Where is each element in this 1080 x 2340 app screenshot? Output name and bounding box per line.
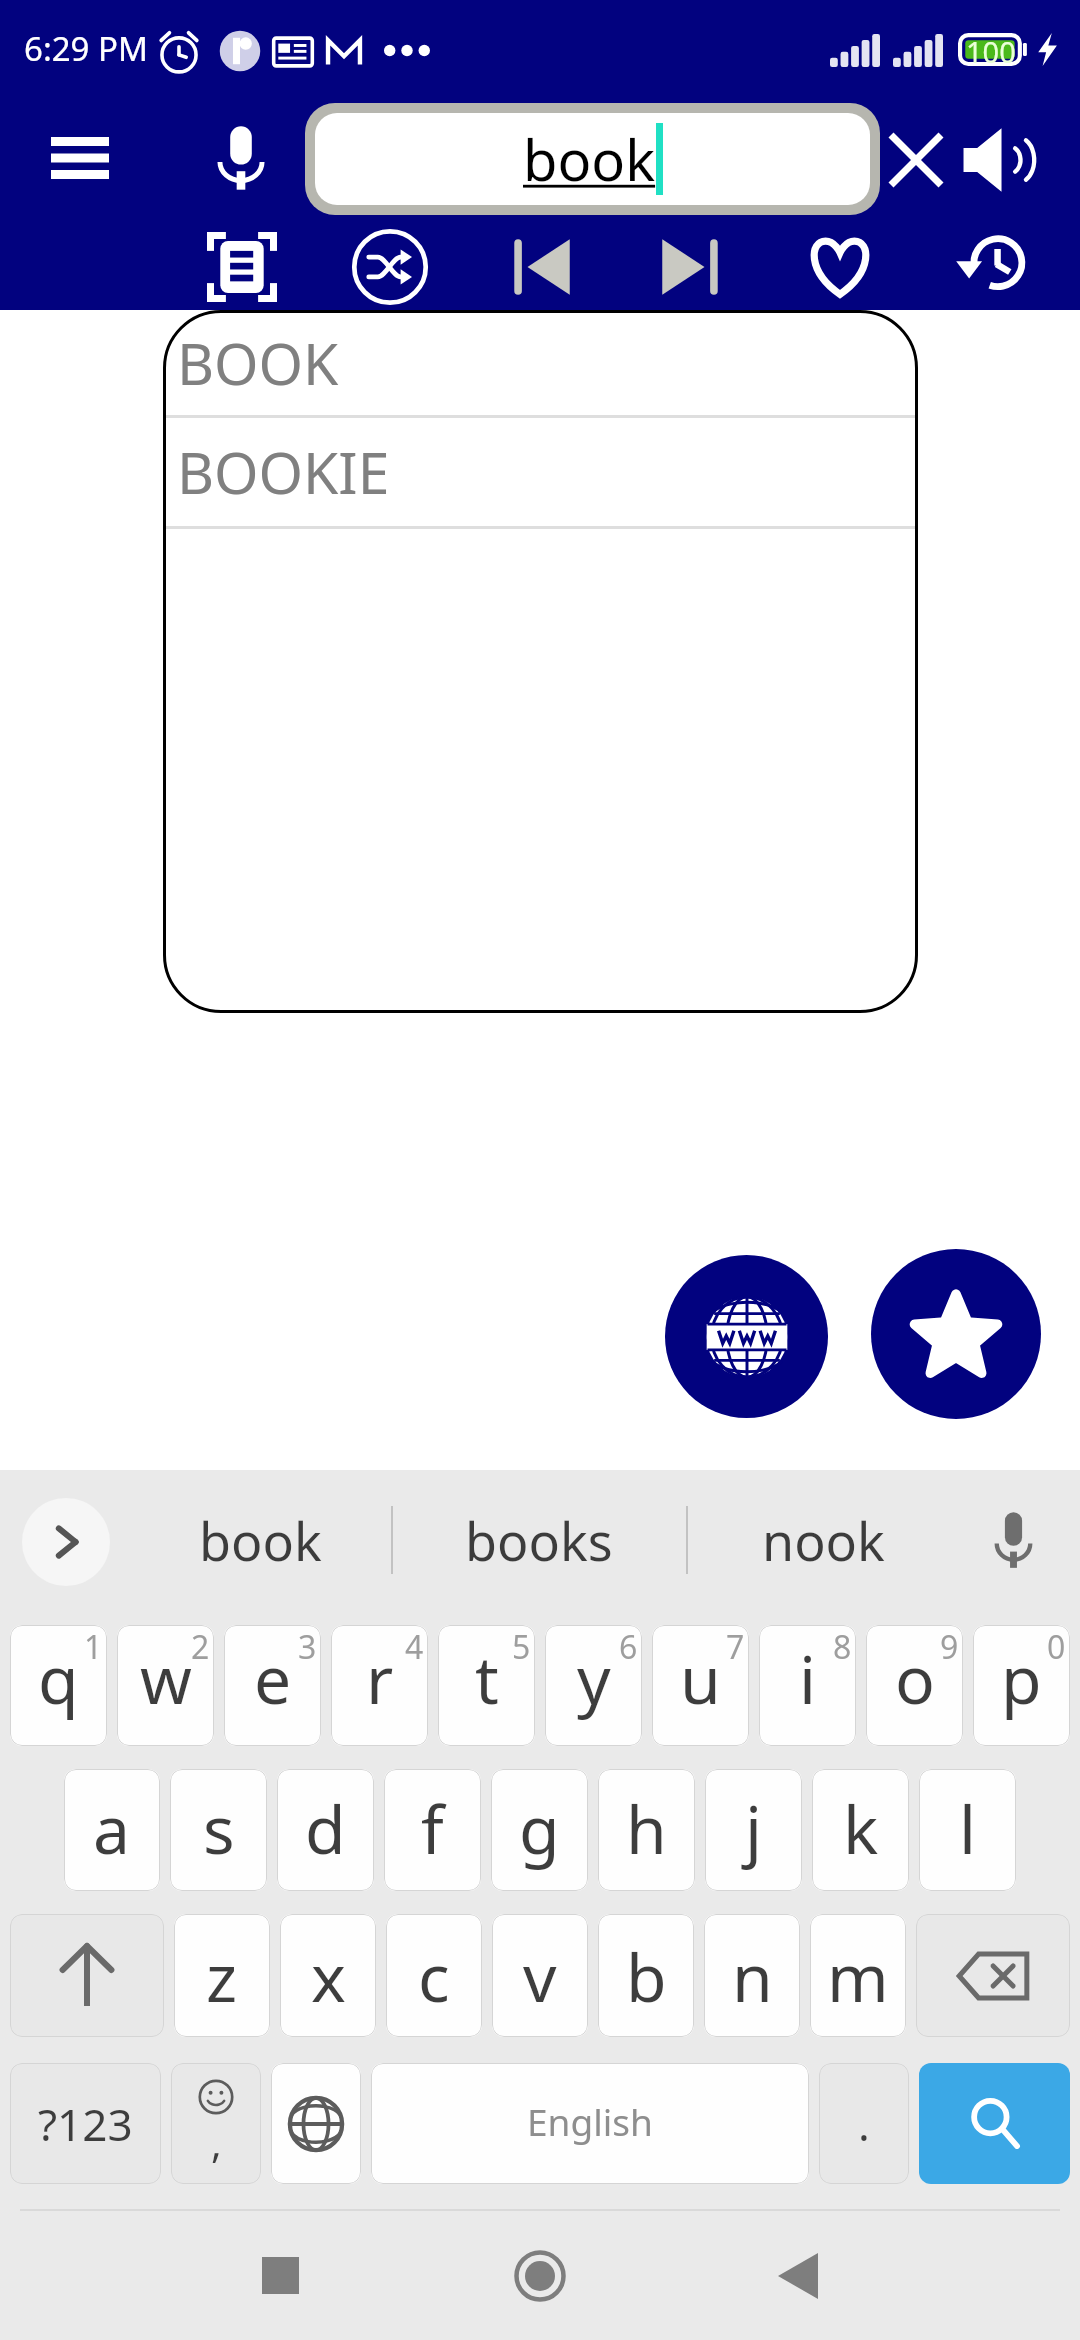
button[interactable]: Emoji — [171, 2063, 261, 2184]
button[interactable]: d — [277, 1769, 374, 1891]
staticText: 100 — [966, 32, 1016, 65]
staticText: 6 — [619, 1625, 638, 1669]
staticText: t — [475, 1633, 499, 1723]
button[interactable]: Web search — [665, 1255, 828, 1418]
button[interactable]: 9 — [866, 1625, 963, 1746]
staticText: b — [626, 1931, 667, 2021]
staticText: 6:29 PM — [24, 26, 148, 71]
staticText: 0 — [1047, 1625, 1066, 1669]
button[interactable]: l — [919, 1769, 1016, 1891]
button[interactable]: 7 — [652, 1625, 749, 1746]
button[interactable]: Change language — [271, 2063, 361, 2184]
button[interactable]: Home — [480, 2211, 600, 2340]
staticText: g — [519, 1783, 560, 1873]
staticText: m — [827, 1931, 889, 2021]
button[interactable]: Backspace — [916, 1914, 1070, 2037]
button[interactable]: More suggestions — [22, 1498, 110, 1586]
button[interactable]: Shuffle — [342, 219, 438, 315]
staticText: d — [305, 1783, 346, 1873]
staticText: p — [1001, 1633, 1042, 1723]
staticText: f — [421, 1783, 444, 1873]
staticText: e — [254, 1633, 292, 1723]
button[interactable]: z — [174, 1914, 270, 2037]
button[interactable]: Favourite — [792, 219, 888, 315]
button[interactable]: book — [130, 1470, 391, 1611]
staticText: 4 — [405, 1625, 424, 1669]
staticText: 5 — [512, 1625, 531, 1669]
button[interactable]: Clear — [866, 110, 966, 210]
staticText: ?123 — [38, 2094, 133, 2154]
button[interactable]: Shift — [10, 1914, 164, 2037]
button[interactable]: Menu — [30, 108, 130, 208]
staticText: 1 — [84, 1625, 103, 1669]
staticText: 9 — [940, 1625, 959, 1669]
button[interactable]: . — [819, 2063, 909, 2184]
staticText: l — [959, 1783, 977, 1873]
staticText: BOOK — [177, 324, 339, 402]
button[interactable]: a — [64, 1769, 160, 1891]
button[interactable]: f — [384, 1769, 481, 1891]
button[interactable]: x — [280, 1914, 376, 2037]
staticText: book — [199, 1505, 322, 1576]
staticText: i — [799, 1633, 817, 1723]
staticText: r — [366, 1633, 394, 1723]
button[interactable]: Scan — [194, 219, 290, 315]
button[interactable]: Next — [642, 219, 738, 315]
button[interactable]: h — [598, 1769, 695, 1891]
button[interactable]: English — [371, 2063, 809, 2184]
staticText: k — [843, 1783, 879, 1873]
button[interactable]: Back — [738, 2211, 858, 2340]
button[interactable]: v — [492, 1914, 588, 2037]
button[interactable]: c — [386, 1914, 482, 2037]
staticText: v — [523, 1931, 557, 2021]
button[interactable]: BOOK — [163, 310, 918, 418]
button[interactable]: Voice input — [972, 1500, 1054, 1580]
button[interactable]: Search — [919, 2063, 1070, 2184]
staticText: o — [895, 1633, 935, 1723]
button[interactable]: 5 — [438, 1625, 535, 1746]
button[interactable]: Recents — [220, 2211, 340, 2340]
button[interactable]: book — [315, 113, 870, 205]
staticText: nook — [762, 1505, 885, 1576]
button[interactable]: m — [810, 1914, 906, 2037]
staticText: a — [93, 1783, 131, 1873]
button[interactable]: Speak — [950, 110, 1050, 210]
staticText: 8 — [833, 1625, 852, 1669]
button[interactable]: 0 — [973, 1625, 1070, 1746]
staticText: c — [418, 1931, 450, 2021]
staticText: English — [527, 2096, 653, 2146]
button[interactable]: books — [401, 1470, 676, 1611]
staticText: h — [626, 1783, 667, 1873]
staticText: book — [523, 121, 656, 197]
button[interactable]: Previous — [494, 219, 590, 315]
staticText: BOOKIE — [177, 433, 390, 511]
button[interactable]: 3 — [224, 1625, 321, 1746]
staticText: 7 — [726, 1625, 745, 1669]
button[interactable]: Favourites — [871, 1249, 1041, 1419]
button[interactable]: k — [812, 1769, 909, 1891]
button[interactable]: s — [170, 1769, 267, 1891]
staticText: u — [680, 1633, 721, 1723]
button[interactable]: 6 — [545, 1625, 642, 1746]
staticText: j — [745, 1783, 763, 1873]
staticText: y — [577, 1633, 611, 1723]
staticText: 2 — [191, 1625, 210, 1669]
button[interactable]: 1 — [10, 1625, 107, 1746]
button[interactable]: Voice search — [191, 108, 291, 208]
button[interactable]: History — [942, 219, 1038, 315]
button[interactable]: 8 — [759, 1625, 856, 1746]
button[interactable]: nook — [696, 1470, 951, 1611]
staticText: , — [211, 2115, 222, 2169]
button[interactable]: BOOKIE — [163, 418, 918, 529]
button[interactable]: b — [598, 1914, 694, 2037]
staticText: q — [38, 1633, 79, 1723]
button[interactable]: g — [491, 1769, 588, 1891]
button[interactable]: n — [704, 1914, 800, 2037]
staticText: s — [203, 1783, 235, 1873]
button[interactable]: 2 — [117, 1625, 214, 1746]
staticText: x — [311, 1931, 346, 2021]
button[interactable]: j — [705, 1769, 802, 1891]
button[interactable]: ?123 — [10, 2063, 161, 2184]
button[interactable]: 4 — [331, 1625, 428, 1746]
staticText: books — [465, 1505, 613, 1576]
